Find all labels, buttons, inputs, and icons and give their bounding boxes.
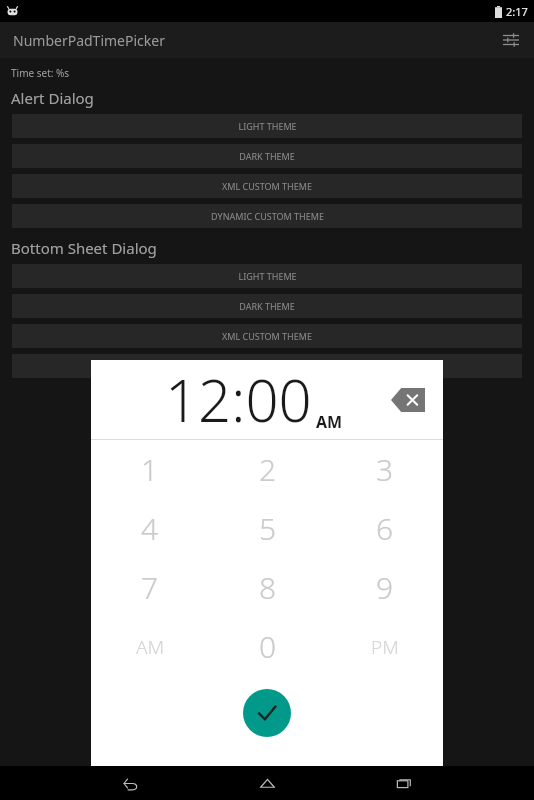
staticText: PM	[371, 634, 399, 660]
button[interactable]: 9	[326, 558, 443, 617]
staticText: XML CUSTOM THEME	[222, 180, 312, 192]
button[interactable]: 4	[91, 499, 209, 558]
staticText: 4	[141, 508, 159, 549]
staticText: Alert Dialog	[11, 88, 94, 108]
staticText: 2:17	[506, 4, 528, 19]
button[interactable]: XML CUSTOM THEME	[12, 324, 522, 348]
button[interactable]: 5	[209, 499, 326, 558]
button[interactable]: 2	[209, 440, 326, 499]
staticText: Bottom Sheet Dialog	[11, 238, 157, 258]
staticText: NumberPadTimePicker	[13, 31, 165, 50]
staticText: 12:00	[165, 360, 312, 439]
staticText: DYNAMIC CUSTOM THEME	[211, 210, 324, 222]
staticText: 0	[259, 626, 277, 667]
staticText: LIGHT THEME	[238, 270, 297, 282]
staticText: 6	[376, 508, 394, 549]
staticText: LIGHT THEME	[238, 120, 297, 132]
staticText: 5	[259, 508, 277, 549]
button[interactable]: 3	[326, 440, 443, 499]
button[interactable]: AM	[91, 617, 209, 676]
button[interactable]: Settings	[496, 25, 526, 55]
staticText: AM	[136, 634, 165, 660]
button[interactable]: LIGHT THEME	[12, 264, 522, 288]
staticText: XML CUSTOM THEME	[222, 330, 312, 342]
staticText: 7	[141, 567, 159, 608]
button[interactable]: 7	[91, 558, 209, 617]
staticText: 1	[141, 449, 159, 490]
staticText: 9	[376, 567, 394, 608]
button[interactable]: DYNAMIC CUSTOM THEME	[12, 354, 522, 378]
staticText: 8	[259, 567, 277, 608]
button[interactable]: 0	[209, 617, 326, 676]
staticText: AM	[316, 411, 343, 433]
button[interactable]: 6	[326, 499, 443, 558]
staticText: 3	[376, 449, 394, 490]
button[interactable]: DARK THEME	[12, 144, 522, 168]
button[interactable]: PM	[326, 617, 443, 676]
button[interactable]: Recent apps	[380, 766, 428, 800]
button[interactable]: Backspace	[391, 388, 425, 412]
button[interactable]: Confirm time	[243, 689, 291, 737]
staticText: 2	[259, 449, 277, 490]
button[interactable]: XML CUSTOM THEME	[12, 174, 522, 198]
button[interactable]: Home	[243, 766, 291, 800]
button[interactable]: 8	[209, 558, 326, 617]
button[interactable]: DYNAMIC CUSTOM THEME	[12, 204, 522, 228]
button[interactable]: Back	[106, 766, 154, 800]
button[interactable]: DARK THEME	[12, 294, 522, 318]
staticText: DARK THEME	[239, 150, 295, 162]
button[interactable]: 1	[91, 440, 209, 499]
staticText: DARK THEME	[239, 300, 295, 312]
button[interactable]: LIGHT THEME	[12, 114, 522, 138]
staticText: Time set: %s	[11, 66, 70, 80]
